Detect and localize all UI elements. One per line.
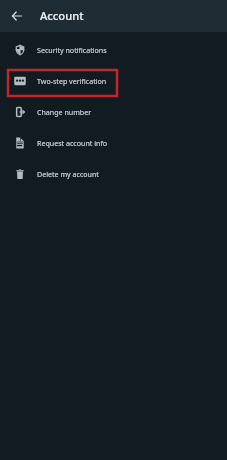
button[interactable]: Back [0, 0, 32, 32]
staticText: Security notifications [37, 45, 107, 55]
button[interactable]: Request account info [0, 127, 227, 158]
staticText: Account [40, 8, 84, 23]
staticText: Change number [37, 107, 92, 117]
button[interactable]: Two-step verification [0, 65, 227, 96]
staticText: Delete my account [37, 169, 99, 179]
button[interactable]: Security notifications [0, 34, 227, 65]
button[interactable]: Change number [0, 96, 227, 127]
staticText: Two-step verification [37, 76, 107, 86]
staticText: Request account info [37, 138, 108, 148]
button[interactable]: Delete my account [0, 158, 227, 189]
